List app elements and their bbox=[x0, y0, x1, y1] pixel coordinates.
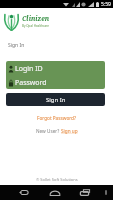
button[interactable]: Menu bbox=[100, 185, 112, 200]
button[interactable]: Sign In bbox=[6, 93, 105, 106]
button[interactable]: Back bbox=[16, 185, 32, 200]
staticText: Clinizen bbox=[22, 14, 50, 23]
button[interactable]: Login ID bbox=[8, 63, 105, 75]
staticText: Forgot Password? bbox=[37, 115, 77, 121]
staticText: New User? bbox=[36, 128, 61, 134]
staticText: Sign In bbox=[46, 96, 66, 104]
button[interactable]: Sign up bbox=[61, 128, 78, 134]
button[interactable]: Recent apps bbox=[77, 185, 93, 200]
staticText: © Sollet Soft Solutions bbox=[36, 177, 78, 182]
button[interactable]: Password bbox=[8, 77, 105, 89]
staticText: Login ID bbox=[15, 64, 43, 74]
button[interactable]: Home bbox=[47, 185, 63, 200]
staticText: Password bbox=[15, 78, 47, 88]
staticText: Sign In bbox=[8, 42, 25, 49]
button[interactable]: Forgot Password? bbox=[0, 113, 113, 122]
staticText: 5:59 bbox=[101, 1, 111, 8]
staticText: By Opal Healthcare bbox=[22, 24, 49, 28]
